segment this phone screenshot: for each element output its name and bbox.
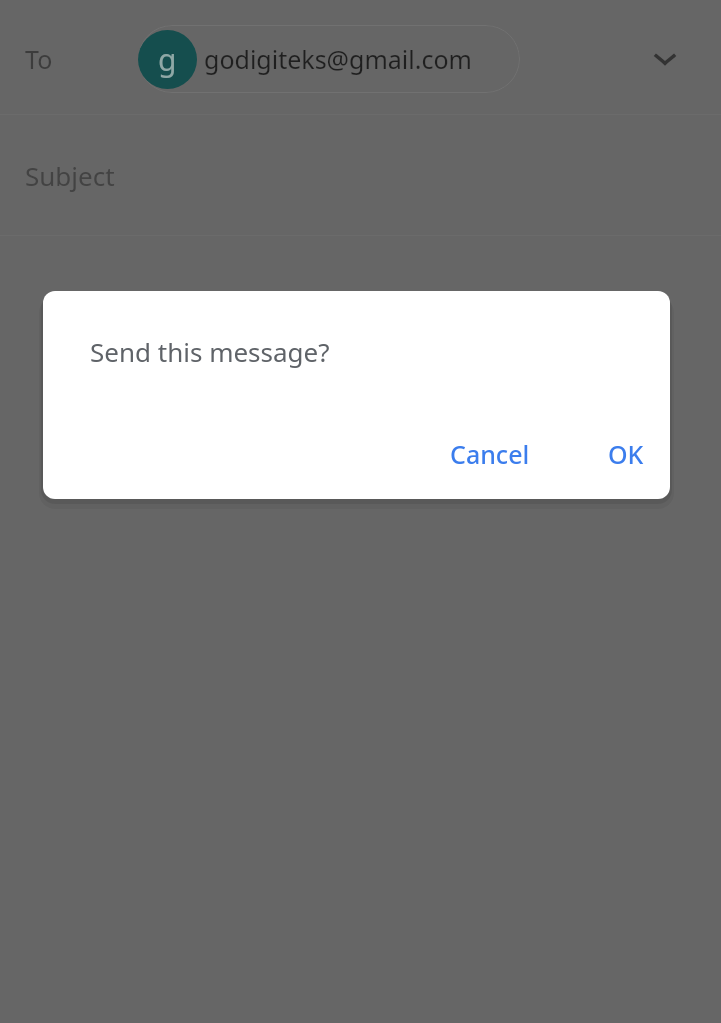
staticText: godigiteks@gmail.com <box>204 42 472 76</box>
staticText: To <box>25 42 53 76</box>
staticText: Subject <box>25 158 115 193</box>
staticText: OK <box>608 437 644 471</box>
button[interactable]: OK <box>592 427 660 481</box>
button[interactable]: Cancel <box>434 427 546 481</box>
staticText: Cancel <box>450 437 530 471</box>
staticText: Send this message? <box>90 334 330 369</box>
button[interactable]: godigiteks@gmail.com <box>138 25 520 93</box>
staticText: g <box>158 39 177 80</box>
button[interactable]: Expand recipients <box>641 35 689 83</box>
